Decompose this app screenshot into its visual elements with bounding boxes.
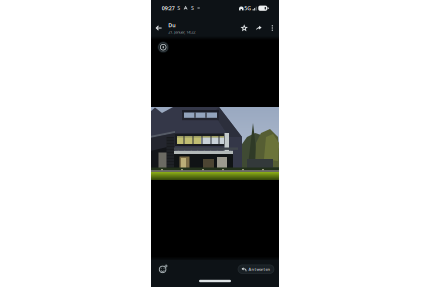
staticText: S bbox=[191, 4, 194, 12]
staticText: 5G bbox=[244, 5, 251, 12]
staticText: Du bbox=[168, 22, 175, 29]
staticText: 09:27 bbox=[162, 5, 175, 12]
button[interactable]: Add reaction bbox=[157, 262, 170, 275]
button[interactable]: Antworten bbox=[238, 265, 274, 273]
staticText: S bbox=[177, 4, 180, 12]
staticText: Antworten bbox=[248, 266, 270, 272]
staticText: 21. Januar, 14:22 bbox=[168, 29, 195, 35]
button[interactable]: Star bbox=[238, 20, 251, 36]
button[interactable]: View once bbox=[157, 41, 170, 54]
button[interactable]: More options bbox=[267, 20, 278, 36]
button[interactable]: Back bbox=[152, 20, 166, 36]
button[interactable]: Forward bbox=[252, 20, 265, 36]
